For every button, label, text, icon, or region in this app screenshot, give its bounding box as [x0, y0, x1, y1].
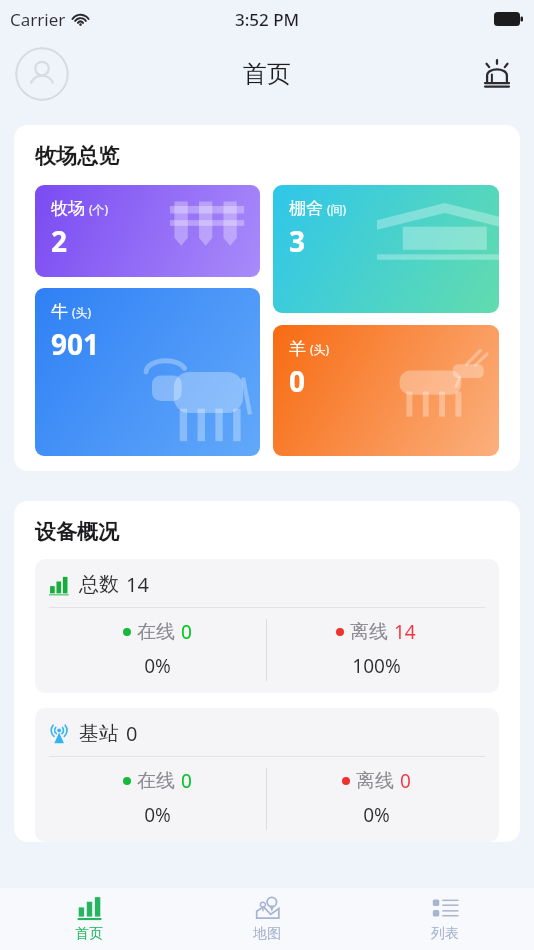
- staticText: 离线: [350, 620, 388, 644]
- staticText: 0%: [363, 802, 390, 828]
- staticText: 牧场: [51, 198, 85, 219]
- staticText: 牛: [51, 301, 68, 322]
- staticText: 901: [51, 325, 100, 363]
- staticText: 0: [181, 619, 192, 645]
- staticText: 设备概况: [35, 519, 119, 545]
- button[interactable]: Alarm: [476, 53, 518, 95]
- staticText: 离线: [356, 769, 394, 793]
- staticText: 3: [289, 222, 306, 260]
- staticText: 14: [394, 619, 416, 645]
- staticText: 2: [51, 222, 68, 260]
- button[interactable]: 总数: [35, 559, 499, 693]
- staticText: 棚舍: [289, 198, 323, 219]
- staticText: 100%: [352, 653, 401, 679]
- staticText: 0%: [144, 802, 171, 828]
- staticText: 在线: [137, 620, 175, 644]
- staticText: Carrier: [10, 8, 66, 31]
- staticText: 地图: [253, 925, 281, 943]
- staticText: 总数: [79, 572, 119, 597]
- staticText: 在线: [137, 769, 175, 793]
- button[interactable]: 牧场: [35, 185, 260, 277]
- staticText: 牧场总览: [35, 143, 119, 169]
- staticText: 0: [289, 362, 306, 400]
- staticText: 首页: [75, 925, 103, 943]
- staticText: (个): [89, 201, 109, 217]
- button[interactable]: 首页: [0, 888, 178, 950]
- staticText: 0: [181, 768, 192, 794]
- staticText: (头): [72, 304, 92, 320]
- button[interactable]: 列表: [356, 888, 534, 950]
- staticText: (间): [327, 201, 347, 217]
- staticText: (头): [310, 341, 330, 357]
- button[interactable]: 地图: [178, 888, 356, 950]
- button[interactable]: 基站: [35, 708, 499, 842]
- staticText: 首页: [243, 59, 291, 89]
- button[interactable]: 牛: [35, 288, 260, 456]
- button[interactable]: 棚舍: [273, 185, 499, 313]
- staticText: 基站: [79, 721, 119, 746]
- staticText: 14: [126, 571, 149, 598]
- staticText: 3:52 PM: [235, 8, 300, 31]
- staticText: 0%: [144, 653, 171, 679]
- staticText: 列表: [431, 925, 459, 943]
- button[interactable]: 羊: [273, 325, 499, 456]
- button[interactable]: Profile: [15, 47, 69, 101]
- staticText: 0: [400, 768, 411, 794]
- staticText: 羊: [289, 338, 306, 359]
- staticText: 0: [126, 720, 138, 747]
